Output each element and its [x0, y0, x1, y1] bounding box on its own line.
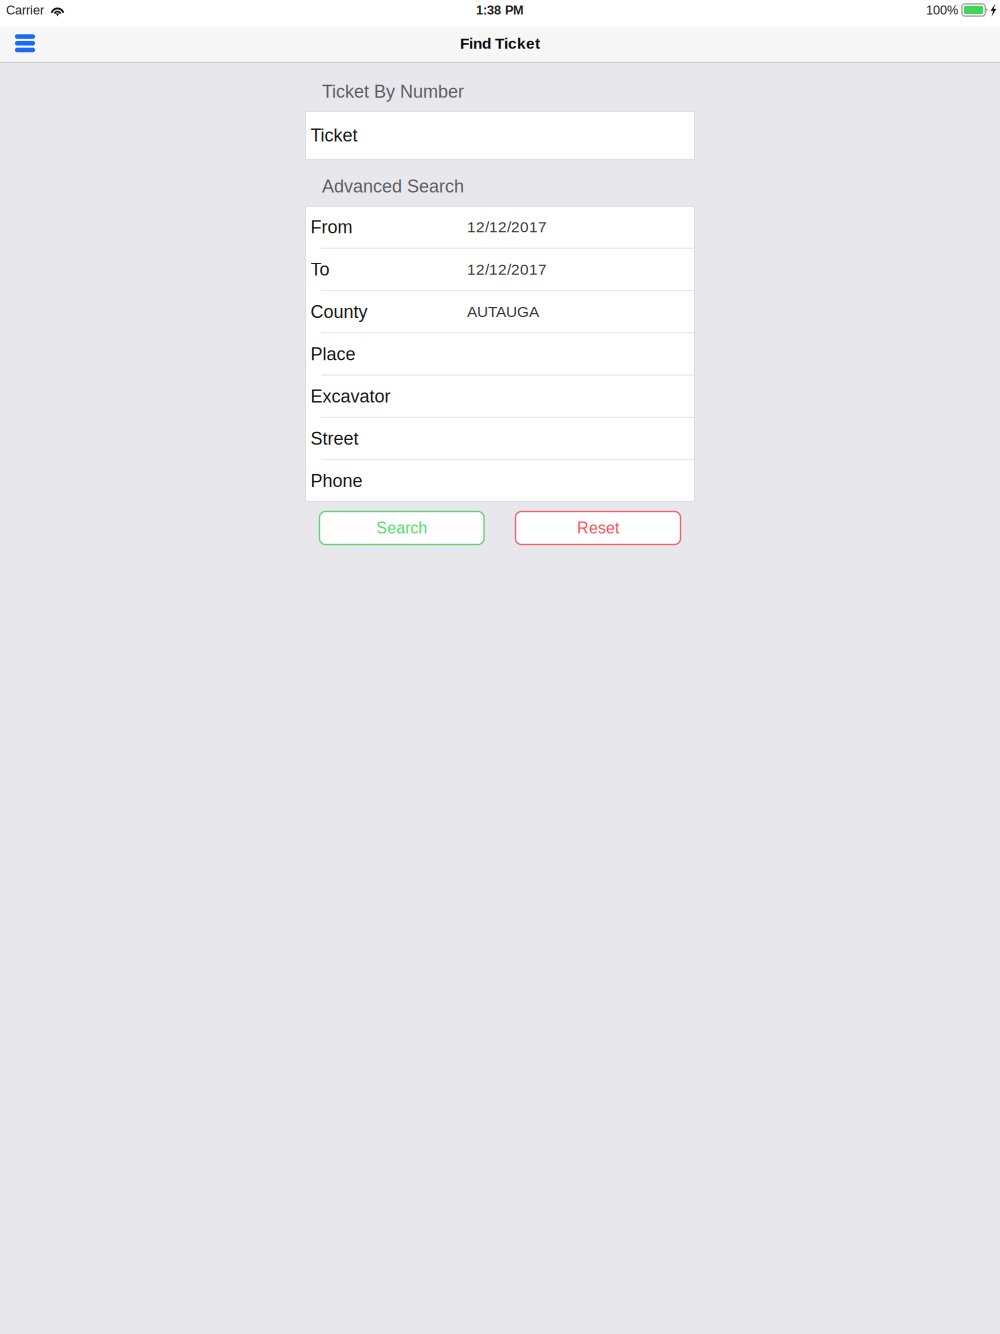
staticText: Ticket By Number	[322, 81, 464, 101]
staticText: County	[310, 302, 367, 322]
staticText: Ticket	[310, 125, 357, 145]
staticText: Advanced Search	[322, 176, 464, 196]
button[interactable]: Excavator	[305, 376, 694, 417]
staticText: 1:38 PM	[476, 3, 524, 17]
button[interactable]: To	[305, 249, 694, 290]
button[interactable]: Street	[305, 418, 694, 459]
button[interactable]: Menu	[0, 26, 50, 63]
staticText: Carrier	[6, 3, 44, 17]
button[interactable]: Phone	[305, 460, 694, 501]
staticText: 12/12/2017	[467, 218, 547, 236]
button[interactable]: Reset	[515, 511, 680, 544]
staticText: Street	[310, 428, 358, 449]
staticText: 12/12/2017	[467, 261, 547, 278]
staticText: Excavator	[310, 386, 390, 406]
button[interactable]: Search	[319, 511, 484, 544]
staticText: Phone	[310, 471, 362, 491]
staticText: Search	[376, 519, 427, 537]
staticText: Reset	[577, 519, 619, 537]
button[interactable]: Ticket	[305, 111, 694, 159]
staticText: AUTAUGA	[467, 303, 539, 320]
staticText: From	[310, 217, 352, 237]
button[interactable]: From	[305, 206, 694, 248]
staticText: Find Ticket	[460, 35, 540, 52]
button[interactable]: Place	[305, 333, 694, 375]
staticText: To	[310, 259, 329, 279]
button[interactable]: County	[305, 291, 694, 332]
staticText: Place	[310, 344, 355, 364]
staticText: 100%	[926, 3, 958, 17]
